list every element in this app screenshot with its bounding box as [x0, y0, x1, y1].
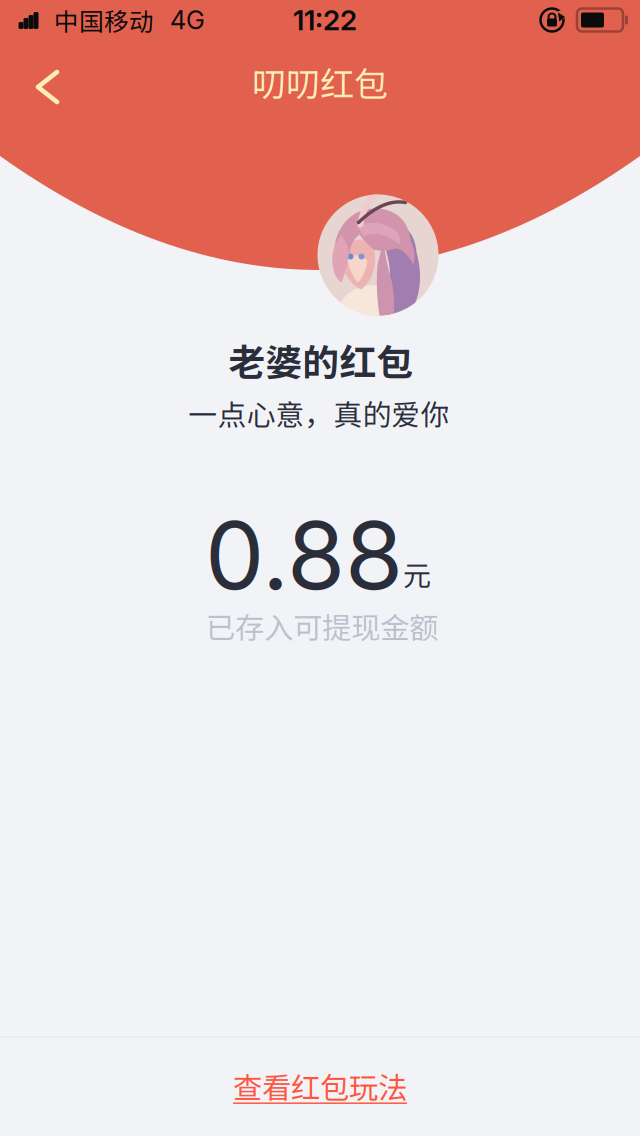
staticText: 4G — [170, 5, 205, 35]
staticText: 一点心意，真的爱你 — [188, 392, 449, 434]
staticText: 叨叨红包 — [252, 57, 388, 107]
staticText: 11:22 — [293, 3, 357, 37]
button[interactable]: Back — [0, 49, 83, 115]
staticText: 老婆的红包 — [228, 333, 413, 387]
staticText: 元 — [403, 553, 431, 594]
staticText: 中国移动 — [54, 2, 154, 38]
button[interactable]: 查看红包玩法 — [0, 1036, 640, 1135]
staticText: 查看红包玩法 — [233, 1065, 407, 1107]
staticText: 0.88 — [205, 498, 403, 612]
staticText: 已存入可提现金额 — [206, 605, 438, 647]
